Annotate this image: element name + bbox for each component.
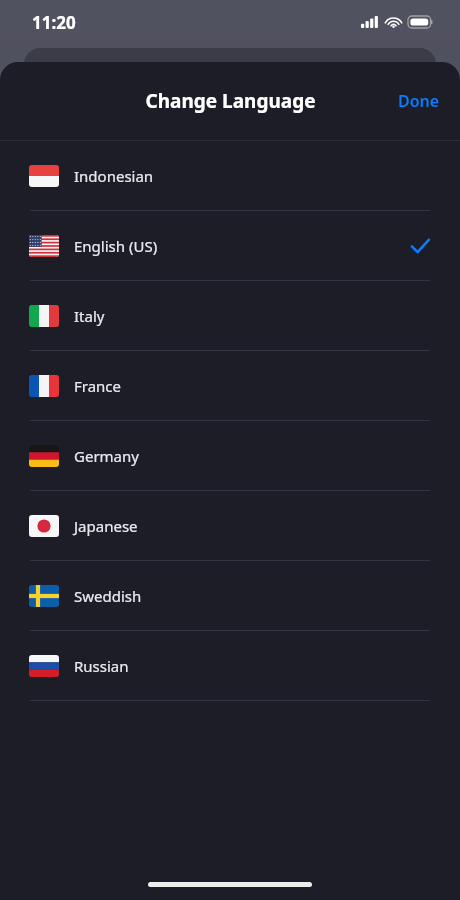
staticText: 11:20 (32, 11, 76, 34)
button[interactable]: Sweddish (0, 561, 460, 631)
staticText: Italy (74, 306, 105, 326)
staticText: English (US) (74, 236, 158, 256)
staticText: Russian (74, 656, 129, 676)
button[interactable]: Done (378, 76, 460, 126)
button[interactable]: Italy (0, 281, 460, 351)
button[interactable]: English (US) (0, 211, 460, 281)
other: Selected (409, 235, 431, 257)
button[interactable]: France (0, 351, 460, 421)
button[interactable]: Japanese (0, 491, 460, 561)
staticText: Done (398, 90, 440, 112)
staticText: Sweddish (74, 586, 142, 606)
button[interactable]: Germany (0, 421, 460, 491)
staticText: Japanese (74, 516, 138, 536)
staticText: Change Language (145, 88, 316, 114)
button[interactable]: Russian (0, 631, 460, 701)
staticText: France (74, 376, 122, 396)
staticText: Germany (74, 446, 139, 466)
button[interactable]: Indonesian (0, 141, 460, 211)
staticText: Indonesian (74, 166, 154, 186)
